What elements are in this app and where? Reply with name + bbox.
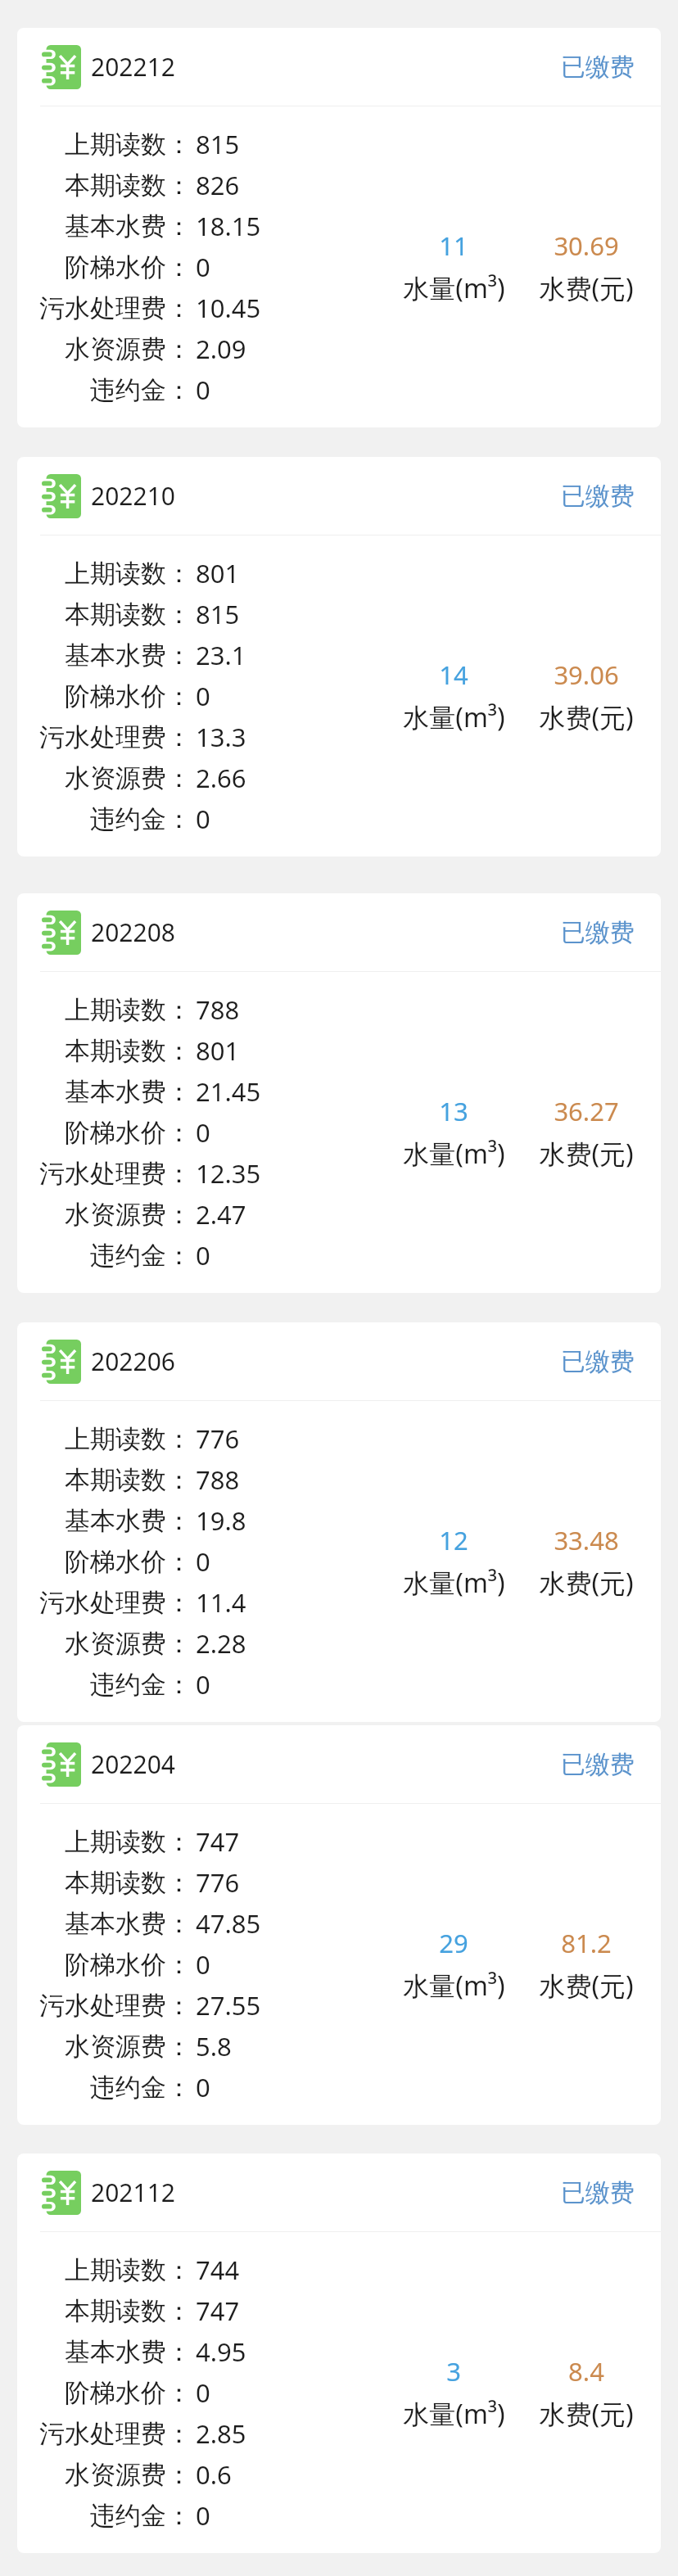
staticText: 2.47 (196, 1197, 246, 1232)
staticText: 阶梯水价： (65, 2377, 192, 2409)
staticText: 14 (439, 658, 468, 692)
staticText: 29 (439, 1926, 468, 1960)
staticText: 0 (196, 250, 210, 284)
staticText: 81.2 (561, 1926, 612, 1960)
staticText: 水资源费： (65, 2459, 192, 2491)
staticText: 815 (196, 127, 240, 161)
staticText: 33.48 (554, 1523, 619, 1557)
staticText: 2.66 (196, 761, 246, 795)
staticText: 2.09 (196, 332, 246, 366)
staticText: 基本水费： (65, 1908, 192, 1940)
staticText: 已缴费 (561, 52, 635, 83)
staticText: 水量(m³) (403, 270, 505, 306)
staticText: 本期读数： (65, 169, 192, 201)
staticText: 水费(元) (539, 1968, 634, 2004)
staticText: 788 (196, 1462, 240, 1497)
staticText: 202206 (91, 1344, 175, 1378)
staticText: 21.45 (196, 1074, 261, 1109)
staticText: 水费(元) (539, 1136, 634, 1172)
staticText: 0 (196, 373, 210, 407)
staticText: 815 (196, 597, 240, 631)
staticText: 11 (439, 228, 468, 263)
staticText: 4.95 (196, 2334, 246, 2369)
staticText: 0 (196, 2498, 210, 2533)
staticText: 5.8 (196, 2029, 232, 2063)
staticText: 污水处理费： (39, 1158, 192, 1190)
staticText: 23.1 (196, 638, 246, 672)
staticText: 基本水费： (65, 1505, 192, 1537)
staticText: 水资源费： (65, 1199, 192, 1231)
staticText: 上期读数： (65, 1826, 192, 1858)
staticText: 违约金： (90, 2072, 192, 2104)
button[interactable]: 已缴费 (561, 1346, 635, 1377)
button[interactable]: 已缴费 (561, 1749, 635, 1780)
staticText: 744 (196, 2253, 240, 2287)
staticText: 36.27 (554, 1094, 619, 1128)
button[interactable]: Water bill (17, 28, 661, 427)
staticText: 2.28 (196, 1626, 246, 1661)
staticText: 上期读数： (65, 2254, 192, 2286)
staticText: 违约金： (90, 1240, 192, 1272)
staticText: 13 (439, 1094, 468, 1128)
staticText: 0 (196, 1667, 210, 1702)
button[interactable]: Water bill (17, 1322, 661, 1722)
staticText: 水费(元) (539, 270, 634, 306)
staticText: 202112 (91, 2176, 175, 2209)
staticText: 基本水费： (65, 2336, 192, 2368)
staticText: 水资源费： (65, 762, 192, 794)
staticText: 801 (196, 1033, 240, 1068)
button[interactable]: 已缴费 (561, 52, 635, 83)
staticText: 上期读数： (65, 558, 192, 590)
staticText: 202212 (91, 50, 175, 84)
other: Water bill (42, 911, 81, 955)
staticText: 801 (196, 556, 240, 590)
button[interactable]: Water bill (17, 893, 661, 1293)
staticText: 水量(m³) (403, 1136, 505, 1172)
staticText: 基本水费： (65, 1076, 192, 1108)
button[interactable]: 已缴费 (561, 481, 635, 512)
staticText: 水资源费： (65, 333, 192, 365)
staticText: 788 (196, 992, 240, 1027)
staticText: 202204 (91, 1747, 175, 1781)
staticText: 747 (196, 2294, 240, 2328)
staticText: 47.85 (196, 1906, 261, 1941)
staticText: 水费(元) (539, 2396, 634, 2432)
staticText: 202208 (91, 915, 175, 949)
other: Water bill (42, 2171, 81, 2215)
staticText: 747 (196, 1824, 240, 1859)
staticText: 污水处理费： (39, 1990, 192, 2022)
staticText: 上期读数： (65, 1423, 192, 1455)
button[interactable]: Water bill (17, 457, 661, 856)
staticText: 12.35 (196, 1156, 261, 1191)
staticText: 0 (196, 1238, 210, 1272)
button[interactable]: 已缴费 (561, 917, 635, 948)
staticText: 上期读数： (65, 129, 192, 160)
staticText: 30.69 (554, 228, 619, 263)
staticText: 违约金： (90, 374, 192, 406)
staticText: 已缴费 (561, 1749, 635, 1780)
staticText: 0.6 (196, 2457, 232, 2492)
staticText: 本期读数： (65, 2295, 192, 2327)
button[interactable]: 已缴费 (561, 2177, 635, 2208)
staticText: 阶梯水价： (65, 680, 192, 712)
staticText: 水量(m³) (403, 1968, 505, 2004)
staticText: 阶梯水价： (65, 251, 192, 283)
staticText: 已缴费 (561, 481, 635, 512)
staticText: 水费(元) (539, 699, 634, 735)
staticText: 基本水费： (65, 639, 192, 671)
staticText: 已缴费 (561, 917, 635, 948)
staticText: 13.3 (196, 720, 246, 754)
staticText: 776 (196, 1865, 240, 1900)
button[interactable]: Water bill (17, 2153, 661, 2553)
staticText: 776 (196, 1421, 240, 1456)
staticText: 0 (196, 1544, 210, 1579)
staticText: 阶梯水价： (65, 1546, 192, 1578)
staticText: 上期读数： (65, 994, 192, 1026)
staticText: 8.4 (568, 2354, 604, 2388)
staticText: 污水处理费： (39, 2418, 192, 2450)
staticText: 本期读数： (65, 1035, 192, 1067)
staticText: 0 (196, 2375, 210, 2410)
staticText: 污水处理费： (39, 292, 192, 324)
staticText: 0 (196, 1115, 210, 1150)
button[interactable]: Water bill (17, 1725, 661, 2125)
